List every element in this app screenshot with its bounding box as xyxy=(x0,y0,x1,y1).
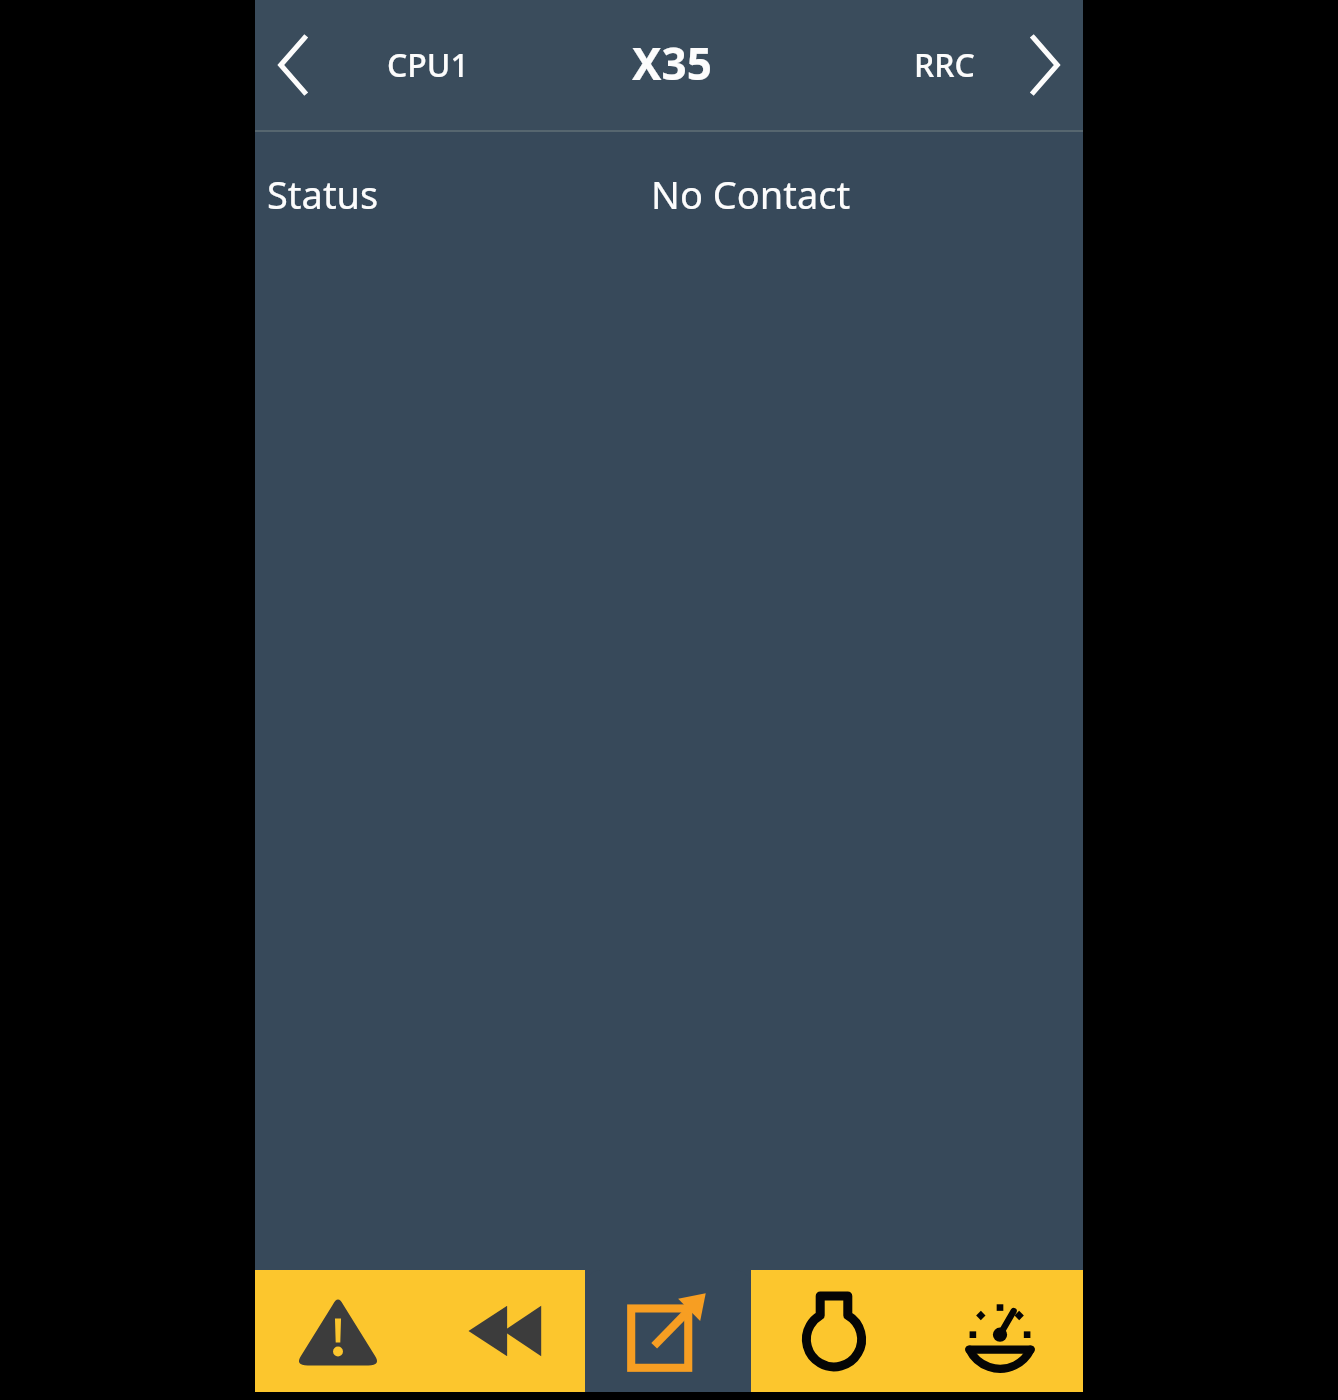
staticText: Status xyxy=(267,168,379,220)
button[interactable]: CPU1 xyxy=(331,0,541,130)
button[interactable]: Lamp xyxy=(751,1270,917,1392)
staticText: No Contact xyxy=(651,168,851,220)
button[interactable]: Rewind xyxy=(420,1270,585,1392)
staticText: X35 xyxy=(632,33,712,93)
staticText: CPU1 xyxy=(387,43,469,87)
button[interactable]: Previous xyxy=(255,0,331,130)
staticText: RRC xyxy=(914,43,975,87)
button[interactable]: Alarms xyxy=(255,1270,420,1392)
button[interactable]: Next xyxy=(1007,0,1083,130)
button[interactable]: Gauge xyxy=(917,1270,1083,1392)
button[interactable]: Outputs xyxy=(585,1270,751,1392)
button[interactable]: RRC xyxy=(797,0,1007,130)
